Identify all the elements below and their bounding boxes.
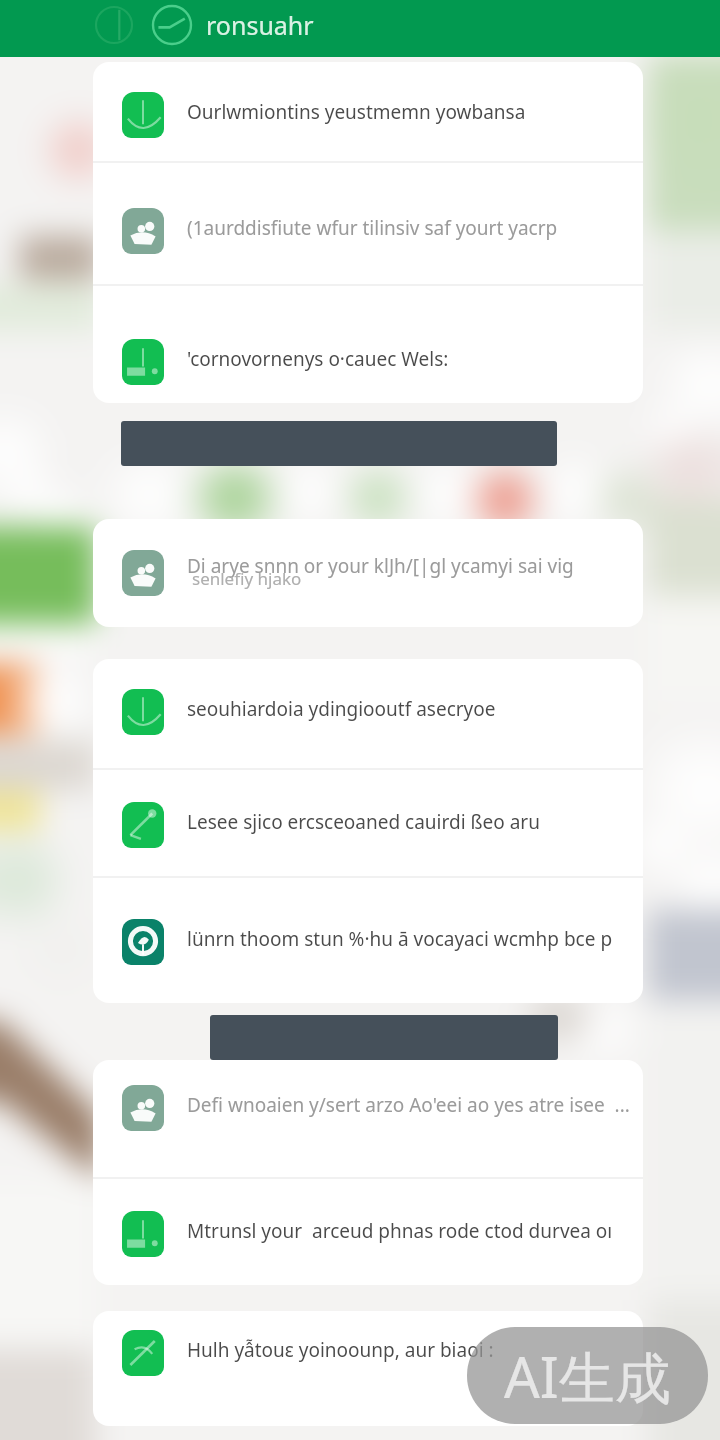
staticText: Lesee sjico ercsceoaned cauirdi ßeo aru (187, 809, 540, 835)
button[interactable]: Back (92, 3, 136, 47)
staticText: lünrn thoom stun %·hu ā vocayaci wcmhp b… (187, 926, 613, 952)
button[interactable]: Di arye snnn or your klJh/[|gl ycamyi sa… (93, 519, 643, 627)
staticText: Defi wnoaien y/sert arzo Ao'eei ao yes a… (187, 1092, 630, 1118)
button[interactable]: (1aurddisfiute wfur tilinsiv saf yourt y… (93, 161, 643, 284)
button[interactable]: Hulh yẫtouε yoinoounp, aur biaoi : (93, 1311, 643, 1426)
button[interactable]: Lesee sjico ercsceoaned cauirdi ßeo aru (93, 768, 643, 876)
staticText: seouhiardoia ydingiooutf asecryoe (187, 696, 496, 722)
staticText: ronsuahr (206, 8, 314, 42)
staticText: (1aurddisfiute wfur tilinsiv saf yourt y… (187, 215, 558, 241)
button[interactable]: Ourlwmiontins yeustmemn yowbansa (93, 62, 643, 161)
staticText: Hulh yẫtouε yoinoounp, aur biaoi : (187, 1337, 494, 1363)
staticText: Ourlwmiontins yeustmemn yowbansa (187, 99, 526, 125)
staticText: AI生成 (504, 1338, 671, 1414)
staticText: senlefiy hjako (192, 567, 302, 590)
button[interactable]: Defi wnoaien y/sert arzo Ao'eei ao yes a… (93, 1060, 643, 1177)
button[interactable]: Mtrunsl your arceud phnas rode ctod durv… (93, 1177, 643, 1285)
staticText: 'cornovornenys o·cauec Wels: (187, 346, 449, 372)
button[interactable]: seouhiardoia ydingiooutf asecryoe (93, 659, 643, 768)
button[interactable]: 'cornovornenys o·cauec Wels: (93, 284, 643, 403)
button[interactable]: lünrn thoom stun %·hu ā vocayaci wcmhp b… (93, 876, 643, 1003)
staticText: Mtrunsl your arceud phnas rode ctod durv… (187, 1218, 613, 1244)
staticText: Di arye snnn or your klJh/[|gl ycamyi sa… (187, 553, 574, 579)
button[interactable]: Profile (150, 3, 194, 47)
